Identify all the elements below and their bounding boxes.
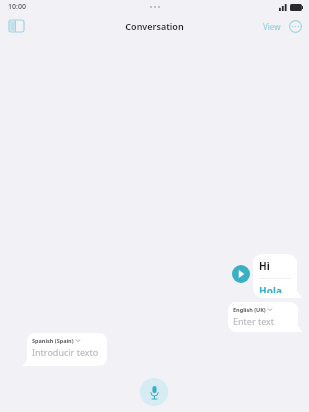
button[interactable]: More options: [288, 19, 303, 34]
staticText: Enter text: [233, 315, 275, 327]
button[interactable]: Microphone: [140, 378, 168, 406]
button[interactable]: English (UK): [228, 302, 298, 332]
staticText: Hi: [259, 259, 270, 273]
staticText: View: [263, 21, 281, 32]
button[interactable]: Play: [232, 265, 250, 283]
staticText: Spanish (Spain): [32, 337, 74, 344]
button[interactable]: Toggle sidebar: [6, 16, 26, 36]
staticText: 10:00: [8, 2, 26, 12]
staticText: Hola: [259, 284, 282, 293]
staticText: Introducir texto: [32, 346, 99, 358]
button[interactable]: View: [261, 18, 283, 35]
button[interactable]: Spanish (Spain): [27, 333, 107, 366]
staticText: Conversation: [125, 20, 184, 32]
staticText: English (UK): [233, 306, 266, 313]
button[interactable]: Hi: [253, 254, 297, 298]
